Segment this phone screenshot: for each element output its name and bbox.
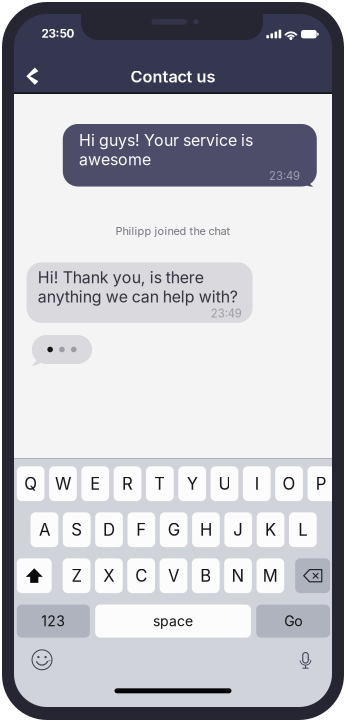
- button[interactable]: S: [63, 512, 91, 547]
- staticText: V: [168, 566, 179, 586]
- staticText: Y: [187, 474, 198, 494]
- staticText: F: [136, 520, 146, 540]
- staticText: Hi! Thank you, is there anything we can …: [38, 268, 238, 306]
- button[interactable]: N: [224, 558, 252, 593]
- staticText: G: [168, 520, 180, 540]
- staticText: J: [233, 520, 243, 540]
- staticText: Hi guys! Your service is awesome: [79, 131, 253, 169]
- staticText: H: [200, 520, 212, 540]
- staticText: X: [103, 566, 114, 586]
- button[interactable]: A: [31, 512, 58, 547]
- staticText: 23:49: [269, 169, 300, 183]
- staticText: T: [154, 474, 165, 494]
- button[interactable]: Delete: [295, 558, 330, 593]
- button[interactable]: G: [160, 512, 187, 547]
- button[interactable]: M: [256, 558, 284, 593]
- staticText: L: [298, 520, 307, 540]
- staticText: Go: [284, 613, 302, 629]
- staticText: E: [90, 474, 100, 494]
- button[interactable]: O: [275, 466, 303, 501]
- staticText: S: [71, 520, 82, 540]
- staticText: 23:49: [211, 307, 242, 320]
- staticText: O: [283, 474, 296, 494]
- button[interactable]: Back: [16, 60, 48, 92]
- button[interactable]: T: [146, 466, 174, 501]
- staticText: 23:50: [41, 26, 74, 40]
- button[interactable]: Q: [17, 466, 44, 501]
- button[interactable]: 123: [17, 605, 90, 638]
- button[interactable]: J: [224, 512, 252, 547]
- button[interactable]: Dictate: [298, 650, 313, 669]
- button[interactable]: D: [95, 512, 123, 547]
- button[interactable]: Shift: [17, 558, 52, 593]
- staticText: Philipp joined the chat: [115, 224, 230, 238]
- staticText: P: [316, 474, 327, 494]
- button[interactable]: W: [49, 466, 77, 501]
- staticText: R: [122, 474, 133, 494]
- staticText: C: [135, 566, 147, 586]
- staticText: M: [263, 566, 278, 586]
- staticText: Q: [24, 474, 37, 494]
- staticText: I: [255, 474, 259, 494]
- staticText: K: [265, 520, 276, 540]
- button[interactable]: X: [95, 558, 123, 593]
- staticText: Contact us: [130, 67, 215, 86]
- staticText: U: [218, 474, 230, 494]
- staticText: W: [55, 474, 71, 494]
- staticText: Z: [71, 566, 81, 586]
- button[interactable]: V: [160, 558, 187, 593]
- staticText: B: [200, 566, 211, 586]
- button[interactable]: I: [243, 466, 271, 501]
- button[interactable]: U: [211, 466, 238, 501]
- staticText: space: [153, 613, 193, 629]
- button[interactable]: Z: [63, 558, 90, 593]
- button[interactable]: L: [289, 512, 317, 547]
- button[interactable]: Y: [178, 466, 206, 501]
- button[interactable]: F: [127, 512, 155, 547]
- staticText: 123: [41, 613, 65, 629]
- button[interactable]: space: [95, 605, 251, 638]
- staticText: N: [231, 566, 244, 586]
- button[interactable]: P: [307, 466, 335, 501]
- button[interactable]: Go: [256, 605, 330, 638]
- button[interactable]: E: [81, 466, 109, 501]
- button[interactable]: K: [257, 512, 284, 547]
- button[interactable]: B: [192, 558, 220, 593]
- button[interactable]: C: [127, 558, 155, 593]
- button[interactable]: R: [114, 466, 141, 501]
- button[interactable]: H: [192, 512, 220, 547]
- staticText: A: [39, 520, 50, 540]
- staticText: D: [103, 520, 115, 540]
- button[interactable]: Emoji: [31, 649, 53, 671]
